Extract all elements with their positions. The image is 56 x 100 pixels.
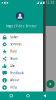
staticText: About	[10, 78, 19, 82]
button[interactable]: Settings	[0, 41, 43, 48]
staticText: Locker	[10, 35, 18, 39]
button[interactable]: Feedback	[0, 69, 43, 77]
button[interactable]: Home	[22, 91, 33, 100]
button[interactable]: Back	[39, 91, 50, 100]
button[interactable]: Help	[0, 84, 43, 91]
button[interactable]: About	[0, 77, 43, 84]
staticText: Like	[10, 64, 15, 68]
staticText: Feedback	[10, 71, 23, 75]
button[interactable]: Rate	[0, 48, 43, 55]
staticText: Share	[10, 57, 18, 60]
staticText: Images Video Selector	[6, 25, 37, 28]
button[interactable]: Like	[0, 62, 43, 69]
button[interactable]: Locker	[0, 33, 43, 41]
button[interactable]: Recent apps	[6, 91, 17, 100]
button[interactable]: Share	[0, 55, 43, 62]
staticText: 12:30	[45, 1, 54, 4]
staticText: Settings	[10, 42, 21, 46]
button[interactable]: Create	[46, 80, 55, 88]
staticText: Help	[10, 86, 17, 89]
staticText: Rate	[10, 50, 17, 53]
